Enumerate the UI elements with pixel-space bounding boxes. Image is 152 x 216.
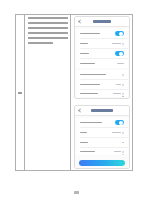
button[interactable] [76,70,128,79]
button[interactable]: Toggle [115,120,124,125]
button[interactable] [76,90,128,97]
button[interactable]: Toggle [76,118,128,127]
button[interactable] [76,39,128,48]
button[interactable]: Back [77,108,82,113]
button[interactable]: Toggle [115,51,124,56]
button[interactable]: Toggle [76,29,128,38]
button[interactable] [76,138,128,147]
button[interactable]: Toggle [76,49,128,58]
button[interactable] [76,148,128,155]
button[interactable] [76,128,128,137]
button[interactable]: Confirm [79,160,125,166]
button[interactable]: Back [77,19,82,24]
button[interactable]: Toggle [115,31,124,36]
button[interactable] [76,80,128,89]
button[interactable] [76,59,128,68]
